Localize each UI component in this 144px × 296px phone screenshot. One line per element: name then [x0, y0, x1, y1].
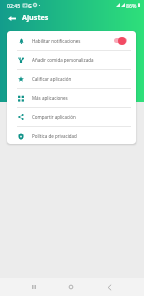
button[interactable]	[113, 34, 131, 47]
staticText: Añadir comida personalizada	[32, 57, 94, 63]
button[interactable]: Back	[99, 278, 119, 296]
staticText: Compartir aplicación	[32, 114, 76, 120]
staticText: Más aplicaciones	[32, 95, 68, 101]
button[interactable]: Política de privacidad	[7, 126, 136, 144]
staticText: Calificar aplicación	[32, 76, 72, 82]
staticText: G	[28, 2, 32, 9]
staticText: Política de privacidad	[32, 133, 77, 139]
button[interactable]: Habilitar notificaciones	[7, 31, 136, 50]
staticText: Ajustes	[22, 12, 49, 22]
button[interactable]: Añadir comida personalizada	[7, 50, 136, 69]
button[interactable]: Recent apps	[24, 278, 44, 296]
staticText: Habilitar notificaciones	[32, 38, 81, 44]
button[interactable]: Más aplicaciones	[7, 88, 136, 107]
staticText: 86%	[126, 2, 137, 9]
button[interactable]: Compartir aplicación	[7, 107, 136, 126]
button[interactable]: Home	[61, 278, 81, 296]
staticText: 02:45	[7, 2, 21, 9]
button[interactable]: Back	[3, 10, 20, 27]
button[interactable]: Calificar aplicación	[7, 69, 136, 88]
